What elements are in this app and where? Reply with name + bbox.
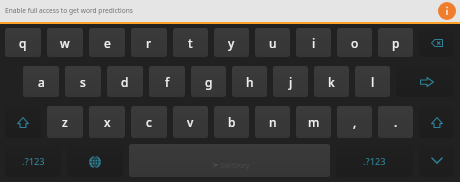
button[interactable]: b	[214, 106, 249, 138]
staticText: Enable full access to get word predictio…	[5, 6, 438, 15]
button[interactable]: u	[255, 28, 290, 57]
button[interactable]: d	[107, 66, 143, 97]
button[interactable]: k	[314, 66, 349, 97]
button[interactable]: r	[131, 28, 167, 57]
button[interactable]: n	[255, 106, 290, 138]
staticText: .	[394, 114, 398, 130]
staticText: g	[205, 74, 213, 90]
button[interactable]: f	[149, 66, 185, 97]
staticText: h	[246, 74, 254, 90]
button[interactable]: h	[232, 66, 267, 97]
button[interactable]: o	[337, 28, 372, 57]
button[interactable]: t	[173, 28, 208, 57]
staticText: SwiftKey	[220, 160, 250, 170]
staticText: .?123	[363, 155, 386, 168]
button[interactable]: Shift	[5, 106, 41, 138]
staticText: r	[146, 35, 152, 51]
staticText: ,	[353, 114, 357, 130]
button[interactable]: g	[191, 66, 226, 97]
button[interactable]: v	[173, 106, 208, 138]
button[interactable]: i	[296, 28, 331, 57]
button[interactable]: s	[65, 66, 101, 97]
button[interactable]: a	[23, 66, 59, 97]
staticText: e	[104, 35, 111, 51]
button[interactable]: Backspace	[419, 28, 454, 57]
staticText: c	[146, 114, 152, 130]
button[interactable]: Change language	[67, 144, 123, 177]
button[interactable]: z	[47, 106, 83, 138]
staticText: q	[19, 35, 27, 51]
button[interactable]: c	[131, 106, 167, 138]
staticText: m	[308, 114, 320, 130]
staticText: .?123	[22, 155, 45, 168]
staticText: k	[328, 74, 335, 90]
button[interactable]: .?123	[336, 144, 413, 177]
button[interactable]: e	[89, 28, 125, 57]
button[interactable]: Enable full access to get word predictio…	[0, 0, 460, 22]
staticText: t	[188, 35, 193, 51]
staticText: x	[104, 114, 111, 130]
button[interactable]: q	[5, 28, 41, 57]
button[interactable]: Info	[438, 2, 456, 20]
button[interactable]: Shift	[419, 106, 454, 138]
staticText: o	[351, 35, 359, 51]
staticText: z	[62, 114, 68, 130]
staticText: n	[269, 114, 277, 130]
staticText: b	[228, 114, 236, 130]
staticText: s	[80, 74, 86, 90]
button[interactable]: y	[214, 28, 249, 57]
button[interactable]: w	[47, 28, 83, 57]
button[interactable]: m	[296, 106, 331, 138]
staticText: d	[121, 74, 129, 90]
button[interactable]: x	[89, 106, 125, 138]
staticText: p	[392, 35, 400, 51]
button[interactable]: .	[378, 106, 413, 138]
staticText: j	[289, 74, 293, 90]
staticText: w	[60, 35, 70, 51]
button[interactable]: j	[273, 66, 308, 97]
button[interactable]: Enter	[396, 66, 454, 97]
staticText: u	[269, 35, 277, 51]
staticText: v	[187, 114, 194, 130]
staticText: f	[165, 74, 170, 90]
staticText: a	[38, 74, 45, 90]
staticText: i	[312, 35, 316, 51]
staticText: y	[228, 35, 235, 51]
button[interactable]: .?123	[5, 144, 61, 177]
button[interactable]: Hide keyboard	[419, 144, 454, 177]
button[interactable]: p	[378, 28, 413, 57]
staticText: l	[371, 74, 375, 90]
button[interactable]: l	[355, 66, 390, 97]
button[interactable]: ,	[337, 106, 372, 138]
